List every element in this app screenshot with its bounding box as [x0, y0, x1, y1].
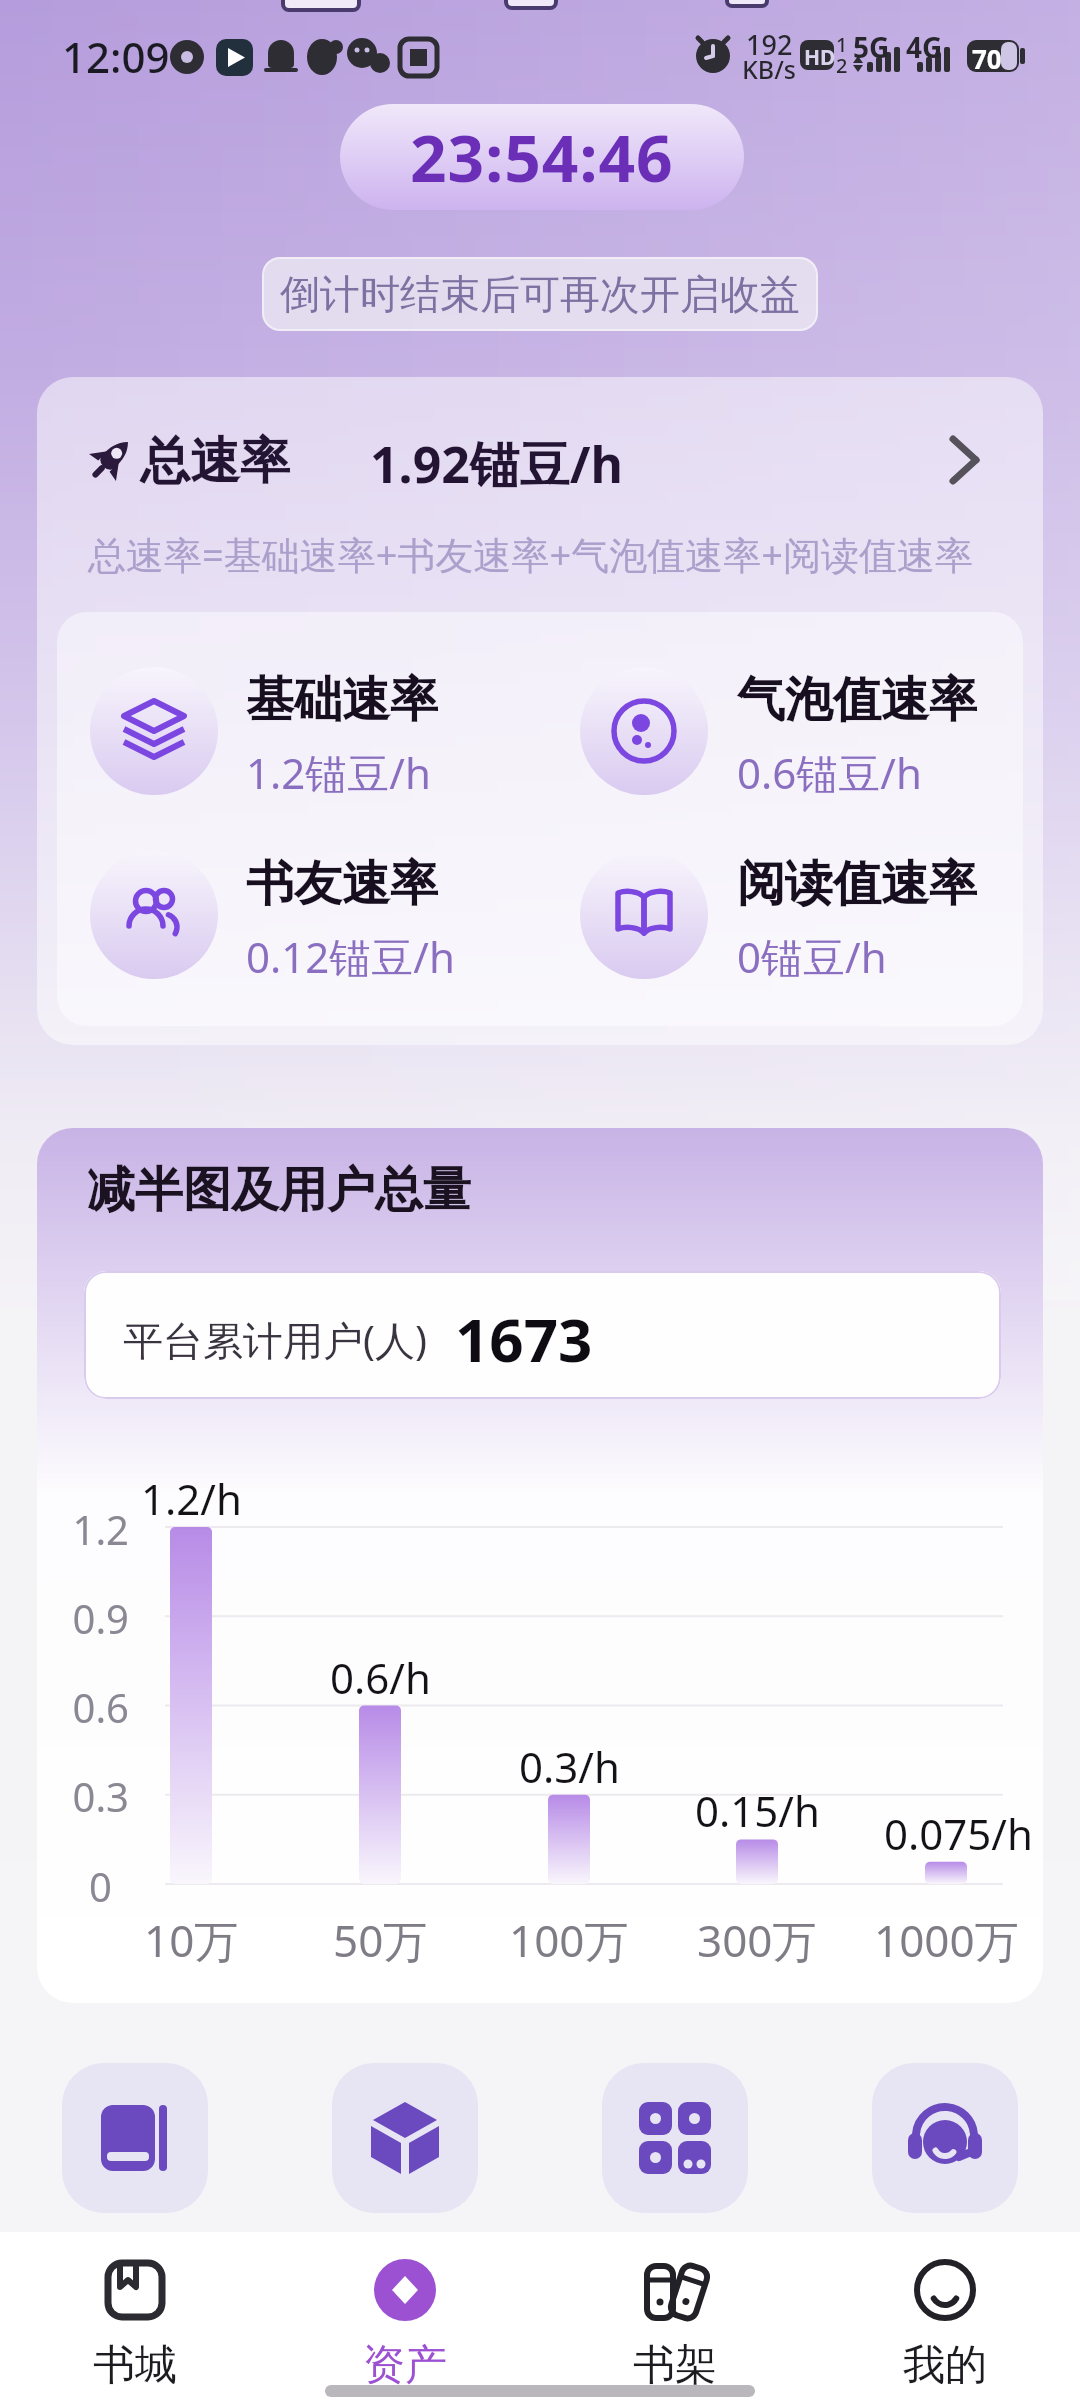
staticText: 倒计时结束后可再次开启收益 [280, 269, 800, 319]
staticText: 0.3/h [519, 1738, 620, 1795]
staticText: 1 [836, 31, 848, 58]
staticText: 0.6锚豆/h [737, 744, 922, 801]
staticText: 10万 [144, 1910, 239, 1970]
staticText: 资产 [363, 2339, 447, 2392]
button[interactable] [872, 2063, 1018, 2213]
staticText: 书架 [633, 2339, 717, 2392]
button[interactable] [62, 2063, 208, 2213]
staticText: 减半图及用户总量 [87, 1160, 471, 1220]
button[interactable] [325, 2240, 485, 2390]
staticText: 12:09 [62, 28, 170, 85]
button[interactable] [84, 1271, 1001, 1399]
staticText: 1.2/h [141, 1470, 242, 1527]
staticText: 192 [746, 26, 793, 63]
staticText: 0.15/h [695, 1782, 820, 1839]
staticText: 总速率 [140, 430, 290, 493]
staticText: 300万 [697, 1910, 817, 1970]
staticText: 1.92锚豆/h [370, 430, 624, 498]
staticText: 书城 [93, 2339, 177, 2392]
staticText: 50万 [333, 1910, 428, 1970]
staticText: 阅读值速率 [737, 854, 977, 914]
staticText: 4G [906, 28, 943, 66]
staticText: 书友速率 [246, 854, 438, 914]
button[interactable] [55, 2240, 215, 2390]
staticText: 2 [836, 52, 848, 79]
button[interactable] [332, 2063, 478, 2213]
button[interactable]: 23:54:46 [340, 104, 744, 210]
staticText: 1.2 [72, 1502, 129, 1556]
staticText: HD [804, 43, 836, 72]
staticText: 0 [89, 1859, 112, 1913]
staticText: 100万 [509, 1910, 629, 1970]
staticText: 0.075/h [884, 1805, 1033, 1862]
button[interactable] [37, 420, 1043, 500]
staticText: 0.6/h [330, 1649, 431, 1706]
staticText: 平台累计用户(人) [123, 1312, 427, 1367]
staticText: KB/s [742, 52, 796, 86]
button[interactable]: 倒计时结束后可再次开启收益 [262, 257, 818, 331]
staticText: 1673 [455, 1298, 593, 1380]
button[interactable] [865, 2240, 1025, 2390]
button[interactable] [595, 2240, 755, 2390]
staticText: 0锚豆/h [737, 928, 887, 985]
staticText: 0.6 [72, 1680, 129, 1734]
staticText: 70 [972, 41, 1002, 76]
staticText: 1.2锚豆/h [246, 744, 431, 801]
staticText: 气泡值速率 [737, 670, 977, 730]
staticText: 23:54:46 [410, 114, 674, 201]
staticText: 0.3 [72, 1769, 129, 1823]
staticText: 0.9 [72, 1591, 129, 1645]
staticText: 0.12锚豆/h [246, 928, 455, 985]
staticText: 1000万 [874, 1910, 1019, 1970]
button[interactable] [602, 2063, 748, 2213]
staticText: 基础速率 [246, 670, 438, 730]
staticText: 总速率=基础速率+书友速率+气泡值速率+阅读值速率 [88, 528, 973, 580]
staticText: 我的 [903, 2339, 987, 2392]
staticText: 5G [853, 28, 890, 66]
